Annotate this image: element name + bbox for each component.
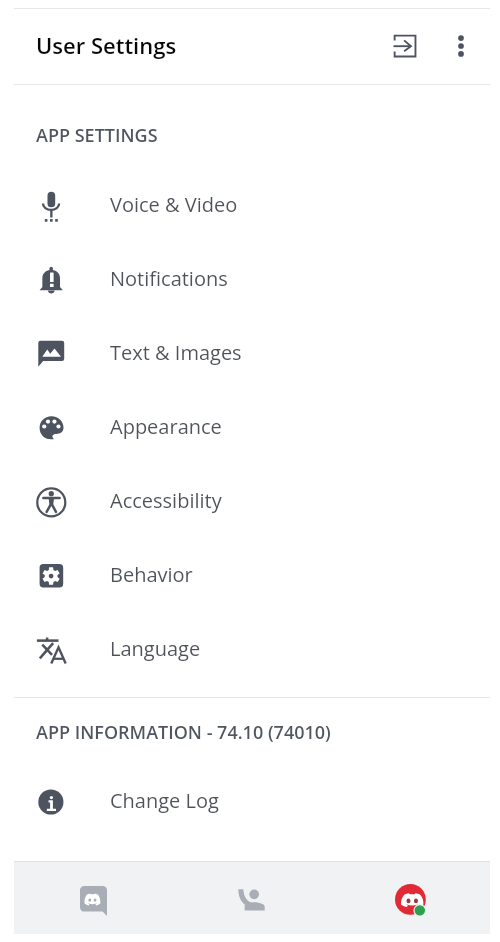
button[interactable]: Servers [14,862,172,934]
button[interactable]: Change Log [0,765,500,839]
button[interactable]: Text & Images [0,317,500,391]
button[interactable]: Voice & Video [0,169,500,243]
button[interactable]: Log out [381,22,429,70]
button[interactable]: Appearance [0,391,500,465]
staticText: Change Log [110,787,219,814]
staticText: APP SETTINGS [36,123,158,148]
staticText: Voice & Video [110,191,238,218]
button[interactable]: Behavior [0,539,500,613]
staticText: Appearance [110,413,222,440]
staticText: Notifications [110,265,228,292]
button[interactable]: Accessibility [0,465,500,539]
staticText: APP INFORMATION - 74.10 (74010) [36,720,331,745]
staticText: Accessibility [110,487,222,514]
staticText: Behavior [110,561,193,588]
button[interactable]: More options [437,22,485,70]
button[interactable]: Notifications [0,243,500,317]
staticText: Language [110,635,201,662]
button[interactable]: Friends [172,862,331,934]
staticText: Text & Images [110,339,242,366]
button[interactable]: Profile [331,862,490,934]
staticText: User Settings [36,30,177,60]
button[interactable]: Language [0,613,500,687]
